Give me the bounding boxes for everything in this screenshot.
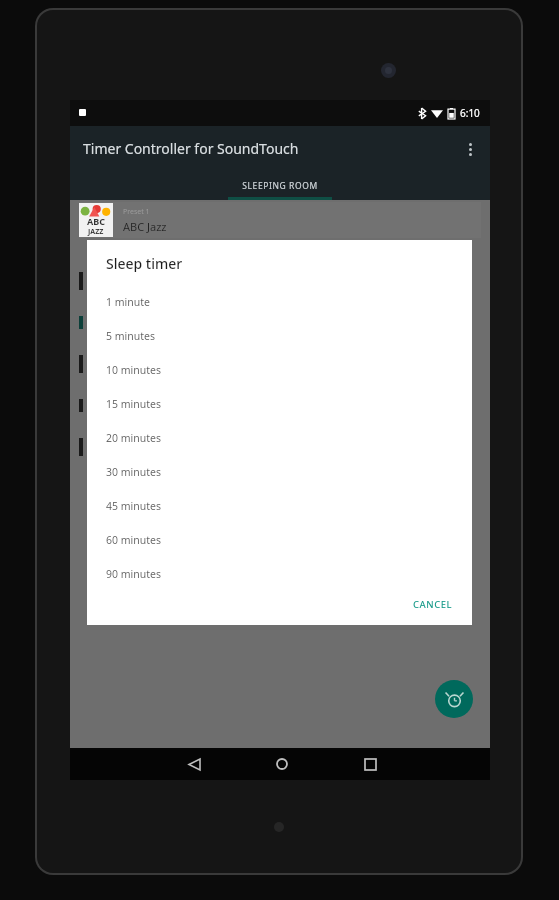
button[interactable]: 30 minutes bbox=[87, 455, 472, 489]
staticText: Sleep timer bbox=[106, 254, 183, 273]
button[interactable]: Home bbox=[262, 748, 302, 780]
button[interactable]: 15 minutes bbox=[87, 387, 472, 421]
staticText: 5 minutes bbox=[106, 329, 155, 343]
staticText: 10 minutes bbox=[106, 363, 161, 377]
button[interactable]: 90 minutes bbox=[87, 557, 472, 591]
staticText: 30 minutes bbox=[106, 465, 161, 479]
staticText: 15 minutes bbox=[106, 397, 161, 411]
staticText: CANCEL bbox=[413, 598, 453, 610]
staticText: JAZZ bbox=[88, 227, 104, 237]
staticText: ABC bbox=[87, 215, 105, 227]
staticText: 6:10 bbox=[460, 106, 480, 120]
staticText: 60 minutes bbox=[106, 533, 161, 547]
button[interactable]: Recent apps bbox=[350, 748, 390, 780]
staticText: SLEEPING ROOM bbox=[242, 180, 318, 192]
button[interactable]: 45 minutes bbox=[87, 489, 472, 523]
staticText: 1 minute bbox=[106, 295, 150, 309]
staticText: ABC Jazz bbox=[123, 219, 167, 234]
button[interactable]: CANCEL bbox=[404, 591, 462, 617]
button[interactable]: 5 minutes bbox=[87, 319, 472, 353]
button[interactable]: SLEEPING ROOM bbox=[70, 171, 490, 200]
button[interactable]: Back bbox=[174, 748, 214, 780]
staticText: Timer Controller for SoundTouch bbox=[83, 139, 299, 158]
button[interactable]: 10 minutes bbox=[87, 353, 472, 387]
button[interactable]: 20 minutes bbox=[87, 421, 472, 455]
button[interactable]: 60 minutes bbox=[87, 523, 472, 557]
staticText: 20 minutes bbox=[106, 431, 161, 445]
button[interactable]: ABC bbox=[79, 202, 481, 238]
staticText: 45 minutes bbox=[106, 499, 161, 513]
staticText: 90 minutes bbox=[106, 567, 161, 581]
button[interactable]: More options bbox=[450, 129, 490, 169]
staticText: Preset 1 bbox=[123, 207, 150, 217]
button[interactable]: Set sleep timer bbox=[435, 680, 473, 718]
button[interactable]: 1 minute bbox=[87, 285, 472, 319]
